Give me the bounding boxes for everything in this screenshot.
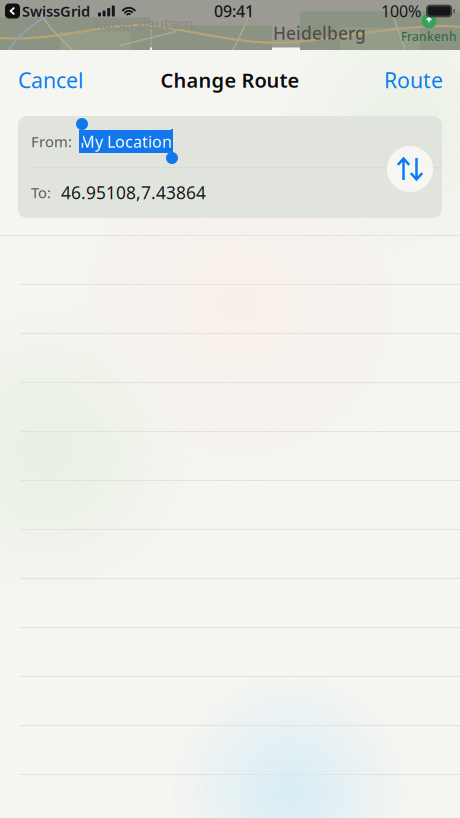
staticText: 09:41	[214, 0, 254, 22]
staticText: From:	[31, 132, 72, 151]
staticText: Cancel	[18, 66, 84, 94]
button[interactable]: Cancel	[0, 58, 102, 102]
staticText: 46.95108,7.43864	[61, 181, 206, 204]
button[interactable]: Swap start and destination	[387, 146, 433, 192]
staticText: Route	[384, 66, 443, 94]
button[interactable]: To:	[18, 167, 442, 218]
button[interactable]: Route	[367, 58, 460, 102]
staticText: To:	[31, 183, 51, 202]
button[interactable]: From:	[18, 116, 442, 167]
staticText: Kaiserslautern	[94, 13, 193, 33]
staticText: Change Route	[160, 67, 299, 93]
staticText: Heidelberg	[273, 21, 366, 44]
staticText: Frankenh	[401, 28, 457, 44]
staticText: 100%	[381, 0, 421, 22]
staticText: SwissGrid	[22, 1, 90, 21]
staticText: My Location	[80, 131, 172, 152]
